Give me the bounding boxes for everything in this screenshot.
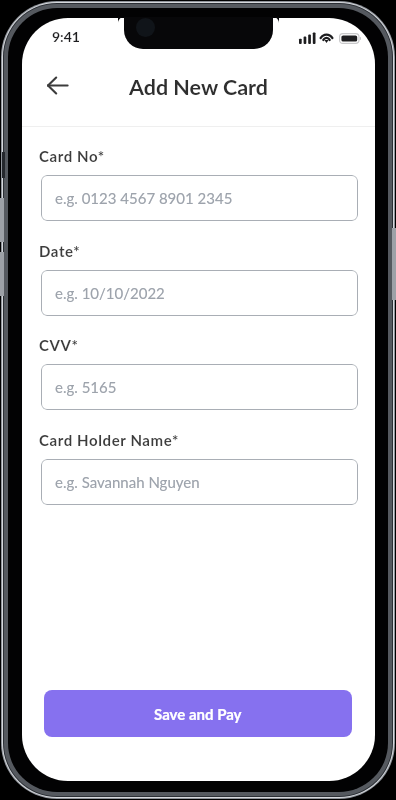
staticText: Add New Card	[129, 74, 268, 100]
staticText: 9:41	[52, 28, 80, 45]
staticText: Card Holder Name*	[39, 431, 179, 449]
button[interactable]: e.g. 10/10/2022	[41, 270, 358, 316]
staticText: e.g. Savannah Nguyen	[55, 473, 200, 491]
staticText: CVV*	[39, 336, 79, 354]
button[interactable]: Save and Pay	[44, 690, 352, 737]
staticText: e.g. 5165	[55, 378, 117, 396]
staticText: Date*	[39, 242, 81, 260]
staticText: e.g. 10/10/2022	[55, 284, 165, 302]
button[interactable]: e.g. 5165	[41, 364, 358, 410]
staticText: Save and Pay	[154, 705, 242, 723]
staticText: Card No*	[39, 147, 105, 165]
button[interactable]: Back	[36, 64, 79, 107]
button[interactable]: e.g. Savannah Nguyen	[41, 459, 358, 505]
staticText: e.g. 0123 4567 8901 2345	[55, 189, 233, 207]
button[interactable]: e.g. 0123 4567 8901 2345	[41, 175, 358, 221]
